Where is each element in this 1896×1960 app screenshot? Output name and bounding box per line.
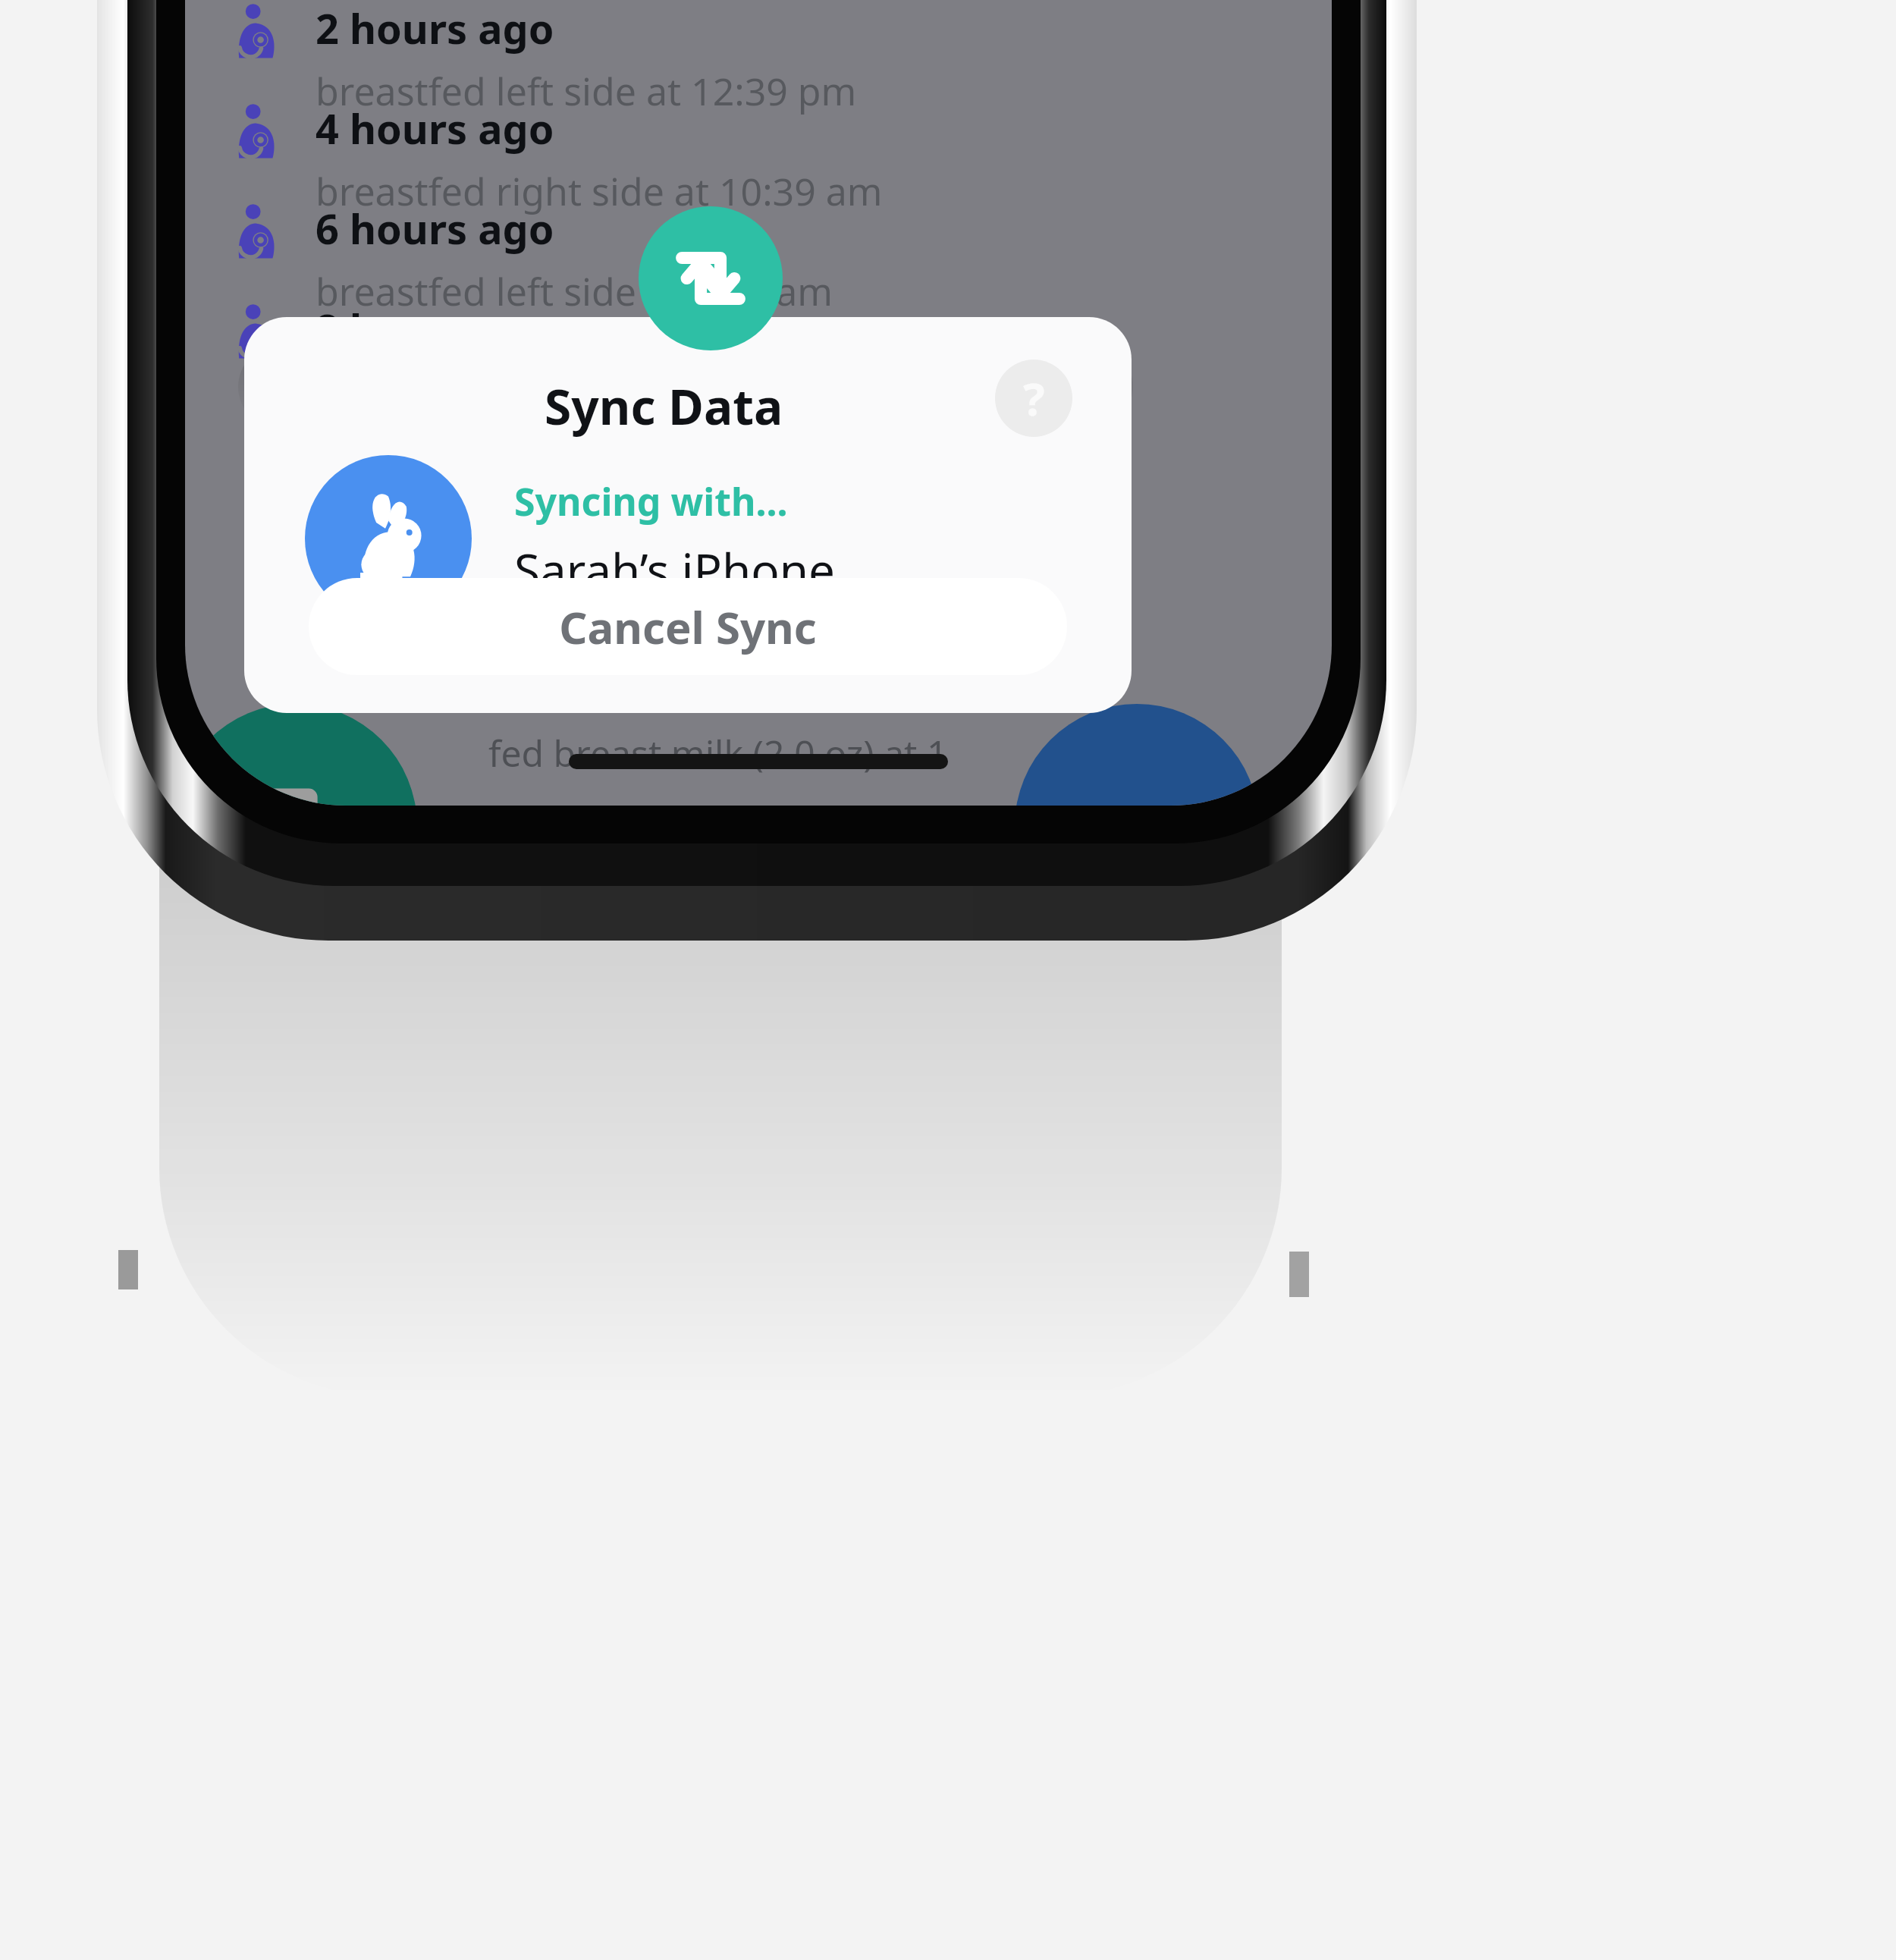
button[interactable]: Cancel Sync [309, 578, 1067, 675]
staticText: ? [1023, 367, 1045, 429]
staticText: Sarah’s iPhone [514, 538, 836, 602]
button[interactable]: More options [1015, 704, 1259, 806]
button[interactable]: 4 hours ago [231, 100, 1292, 217]
staticText: Cancel Sync [559, 597, 817, 657]
staticText: ~20 hours ago [315, 793, 591, 806]
staticText: breastfed left side at 12:39 pm [315, 65, 857, 117]
button[interactable]: Help [995, 360, 1072, 437]
button[interactable]: 8 hours ago [231, 300, 1292, 357]
staticText: 2 hours ago [315, 0, 554, 56]
staticText: Syncing with... [514, 476, 788, 527]
staticText: breastfed left side at 8:35 am [315, 265, 833, 317]
staticText: 4 hours ago [315, 100, 554, 156]
staticText: 8 hours ago [315, 300, 554, 357]
staticText: breastfed right side at 10:39 am [315, 165, 883, 217]
button[interactable]: Sync data [185, 704, 417, 806]
button[interactable]: Syncing [639, 206, 783, 350]
staticText: fed breast milk (2.0 oz) at 1 [488, 728, 948, 777]
staticText: 6 hours ago [315, 200, 554, 256]
staticText: Sync Data [545, 373, 783, 439]
button[interactable]: 2 hours ago [231, 0, 1292, 117]
button[interactable]: Syncing with... [305, 455, 1063, 622]
button[interactable]: Close [670, 759, 845, 806]
button[interactable]: 6 hours ago [231, 200, 1292, 317]
